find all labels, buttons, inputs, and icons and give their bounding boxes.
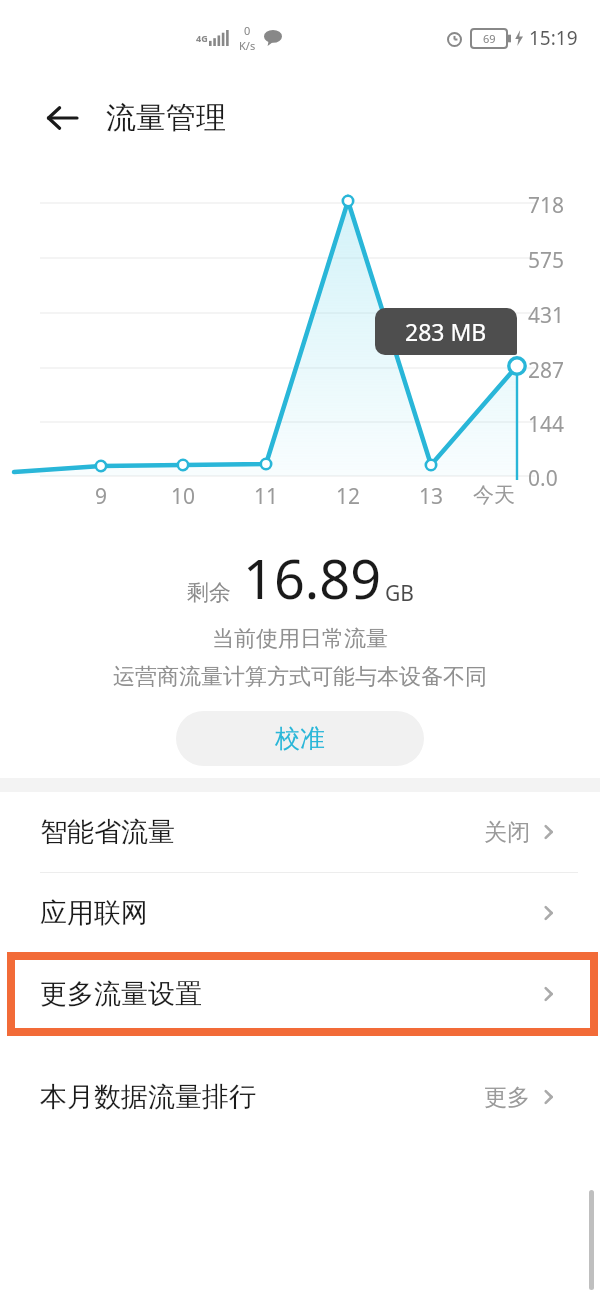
- staticText: 12: [336, 482, 361, 511]
- button[interactable]: 应用联网: [40, 873, 560, 953]
- staticText: 4G: [196, 32, 208, 44]
- staticText: 69: [483, 31, 496, 46]
- staticText: K/s: [239, 38, 256, 53]
- staticText: 431: [528, 301, 565, 330]
- staticText: 287: [528, 356, 565, 385]
- staticText: 智能省流量: [40, 815, 175, 849]
- staticText: 更多流量设置: [40, 977, 202, 1011]
- button[interactable]: 更多流量设置: [40, 954, 560, 1034]
- button[interactable]: 智能省流量: [40, 792, 560, 872]
- staticText: 更多: [484, 1083, 530, 1112]
- staticText: 718: [528, 191, 565, 220]
- staticText: 本月数据流量排行: [40, 1080, 256, 1114]
- staticText: 今天: [473, 482, 515, 508]
- staticText: 校准: [275, 723, 325, 754]
- button[interactable]: 本月数据流量排行: [40, 1062, 560, 1132]
- staticText: 16.89: [243, 541, 382, 615]
- staticText: 283 MB: [405, 316, 487, 347]
- staticText: 剩余: [187, 579, 231, 607]
- staticText: 运营商流量计算方式可能与本设备不同: [113, 663, 487, 691]
- button[interactable]: Back: [38, 94, 86, 142]
- button[interactable]: 校准: [176, 711, 424, 766]
- staticText: GB: [385, 579, 414, 608]
- staticText: 0.0: [528, 464, 558, 493]
- staticText: 144: [528, 410, 565, 439]
- staticText: 15:19: [529, 25, 578, 51]
- staticText: 11: [254, 482, 279, 511]
- staticText: 13: [419, 482, 444, 511]
- staticText: 关闭: [484, 818, 530, 847]
- staticText: 当前使用日常流量: [212, 625, 388, 653]
- staticText: 0: [244, 23, 251, 38]
- staticText: 9: [95, 482, 108, 511]
- staticText: 应用联网: [40, 896, 148, 930]
- staticText: 流量管理: [106, 99, 226, 137]
- staticText: 10: [171, 482, 196, 511]
- staticText: 575: [528, 246, 565, 275]
